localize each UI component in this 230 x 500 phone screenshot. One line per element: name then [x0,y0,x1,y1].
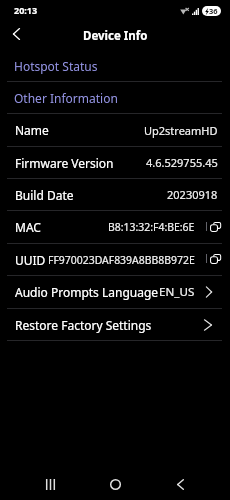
staticText: Other Information [14,90,118,106]
staticText: 36 [209,6,218,16]
button[interactable]: Copy [209,253,222,266]
staticText: Hotspot Status [14,58,98,74]
staticText: MAC [15,219,41,235]
staticText: FF970023DAF839A8BB8B972E [48,253,195,267]
staticText: EN_US [159,284,195,300]
button[interactable]: Home [93,469,137,499]
staticText: Audio Prompts Language [15,284,159,300]
button[interactable]: Back [158,469,202,499]
button[interactable]: Restore Factory Settings [0,309,230,340]
button[interactable]: Build Date [0,179,230,210]
staticText: 20230918 [167,187,218,202]
button[interactable]: MAC [0,211,230,243]
staticText: Device Info [83,28,148,44]
button[interactable]: UUID [0,244,230,275]
staticText: Up2streamHD [144,123,218,138]
staticText: Name [15,122,49,138]
button[interactable]: Hotspot Status [0,50,230,81]
button[interactable]: Other Information [0,82,230,113]
staticText: B8:13:32:F4:BE:6E [108,220,195,234]
button[interactable]: Back [0,23,32,48]
staticText: UUID [15,252,46,268]
button[interactable]: Recents [28,469,72,499]
button[interactable]: Name [0,114,230,146]
staticText: Build Date [15,187,74,203]
button[interactable]: Audio Prompts Language [0,276,230,308]
staticText: 20:13 [14,4,38,16]
staticText: Restore Factory Settings [15,317,152,333]
button[interactable]: Copy [209,221,222,234]
staticText: Firmware Version [15,155,114,171]
button[interactable]: Firmware Version [0,147,230,178]
staticText: 4.6.529755.45 [146,155,218,170]
